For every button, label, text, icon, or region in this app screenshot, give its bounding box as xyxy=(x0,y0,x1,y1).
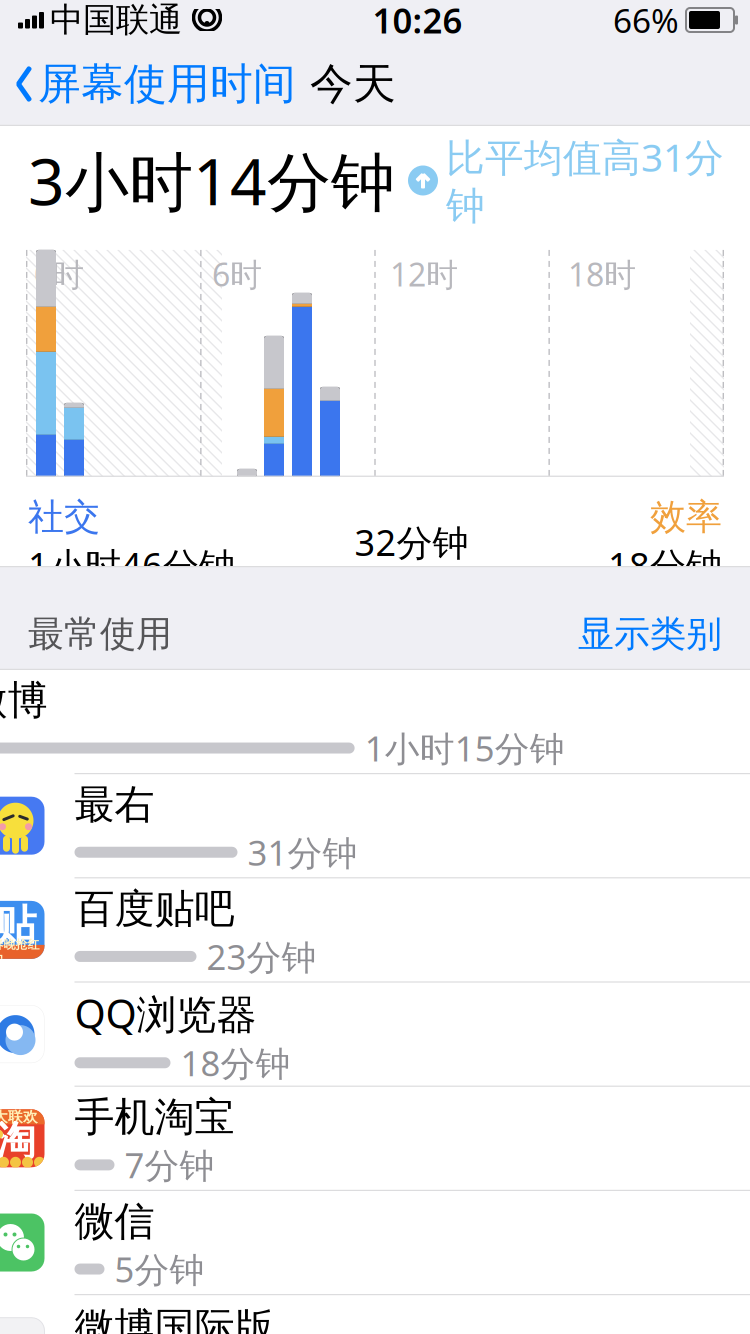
button[interactable]: 微博国际版 xyxy=(0,1295,750,1334)
staticText: 淘 xyxy=(0,1117,35,1166)
staticText: 手机淘宝 xyxy=(74,1093,234,1142)
staticText: 31分钟 xyxy=(247,829,357,875)
staticText: 最右 xyxy=(74,780,154,829)
staticText: 微博国际版 xyxy=(74,1303,274,1334)
staticText: 最常使用 xyxy=(28,612,172,656)
staticText: 显示类别 xyxy=(578,612,722,656)
staticText: 春晚抢红包 xyxy=(0,937,39,967)
button[interactable]: 最右 xyxy=(0,773,750,877)
staticText: 66% xyxy=(613,0,679,42)
staticText: 社交 xyxy=(28,495,100,539)
staticText: 10:26 xyxy=(372,0,462,43)
button[interactable]: 大联欢 xyxy=(0,1086,750,1190)
staticText: 效率 xyxy=(650,495,722,539)
staticText: 百度贴吧 xyxy=(74,884,234,933)
staticText: 23分钟 xyxy=(206,933,316,979)
staticText: 1小时46分钟 xyxy=(28,541,235,589)
staticText: 5分钟 xyxy=(114,1246,204,1292)
button[interactable]: 屏幕使用时间 xyxy=(0,52,296,116)
button[interactable]: 微博 xyxy=(0,670,750,773)
staticText: 12时 xyxy=(390,253,458,295)
staticText: 18分钟 xyxy=(608,541,722,589)
staticText: 贴 xyxy=(0,899,36,950)
button[interactable]: 贴 xyxy=(0,877,750,981)
staticText: 18时 xyxy=(568,253,636,295)
staticText: 微博 xyxy=(0,676,48,725)
staticText: 今天 xyxy=(310,58,396,110)
staticText: 比平均值高31分钟 xyxy=(446,131,724,230)
staticText: 微信 xyxy=(74,1197,154,1246)
staticText: 屏幕使用时间 xyxy=(38,58,296,110)
staticText: 3小时14分钟 xyxy=(28,138,395,223)
staticText: 32分钟 xyxy=(354,518,468,566)
staticText: 中国联通 xyxy=(50,0,182,40)
staticText: 大联欢 xyxy=(0,1108,38,1126)
staticText: 18分钟 xyxy=(180,1040,290,1086)
staticText: 7分钟 xyxy=(124,1142,214,1188)
button[interactable]: 微信 xyxy=(0,1190,750,1294)
staticText: QQ浏览器 xyxy=(74,986,256,1040)
staticText: 1小时15分钟 xyxy=(365,725,565,771)
button[interactable]: 显示类别 xyxy=(578,612,722,656)
button[interactable]: QQ浏览器 xyxy=(0,981,750,1086)
staticText: 6时 xyxy=(212,253,262,295)
staticText: 0时 xyxy=(34,253,84,295)
